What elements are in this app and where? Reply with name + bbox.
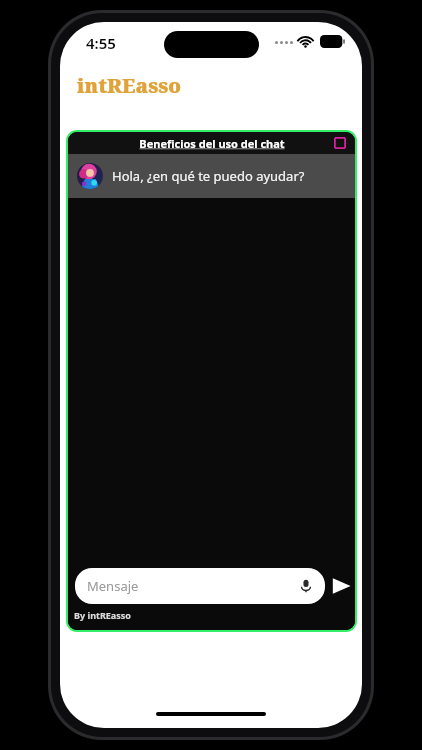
button[interactable]: Send message — [329, 574, 353, 598]
button[interactable]: Voice input — [299, 579, 313, 593]
staticText: Mensaje — [87, 577, 139, 595]
button[interactable]: Mensaje — [75, 568, 325, 604]
button[interactable]: Expand chat — [332, 135, 348, 151]
staticText: By intREasso — [74, 609, 131, 621]
staticText: Hola, ¿en qué te puedo ayudar? — [112, 167, 305, 185]
staticText: Beneficios del uso del chat — [139, 136, 285, 151]
button[interactable]: Beneficios del uso del chat — [68, 132, 355, 154]
button[interactable]: Hola, ¿en qué te puedo ayudar? — [68, 154, 355, 198]
staticText: 4:55 — [86, 33, 116, 53]
staticText: intREasso — [77, 72, 182, 99]
